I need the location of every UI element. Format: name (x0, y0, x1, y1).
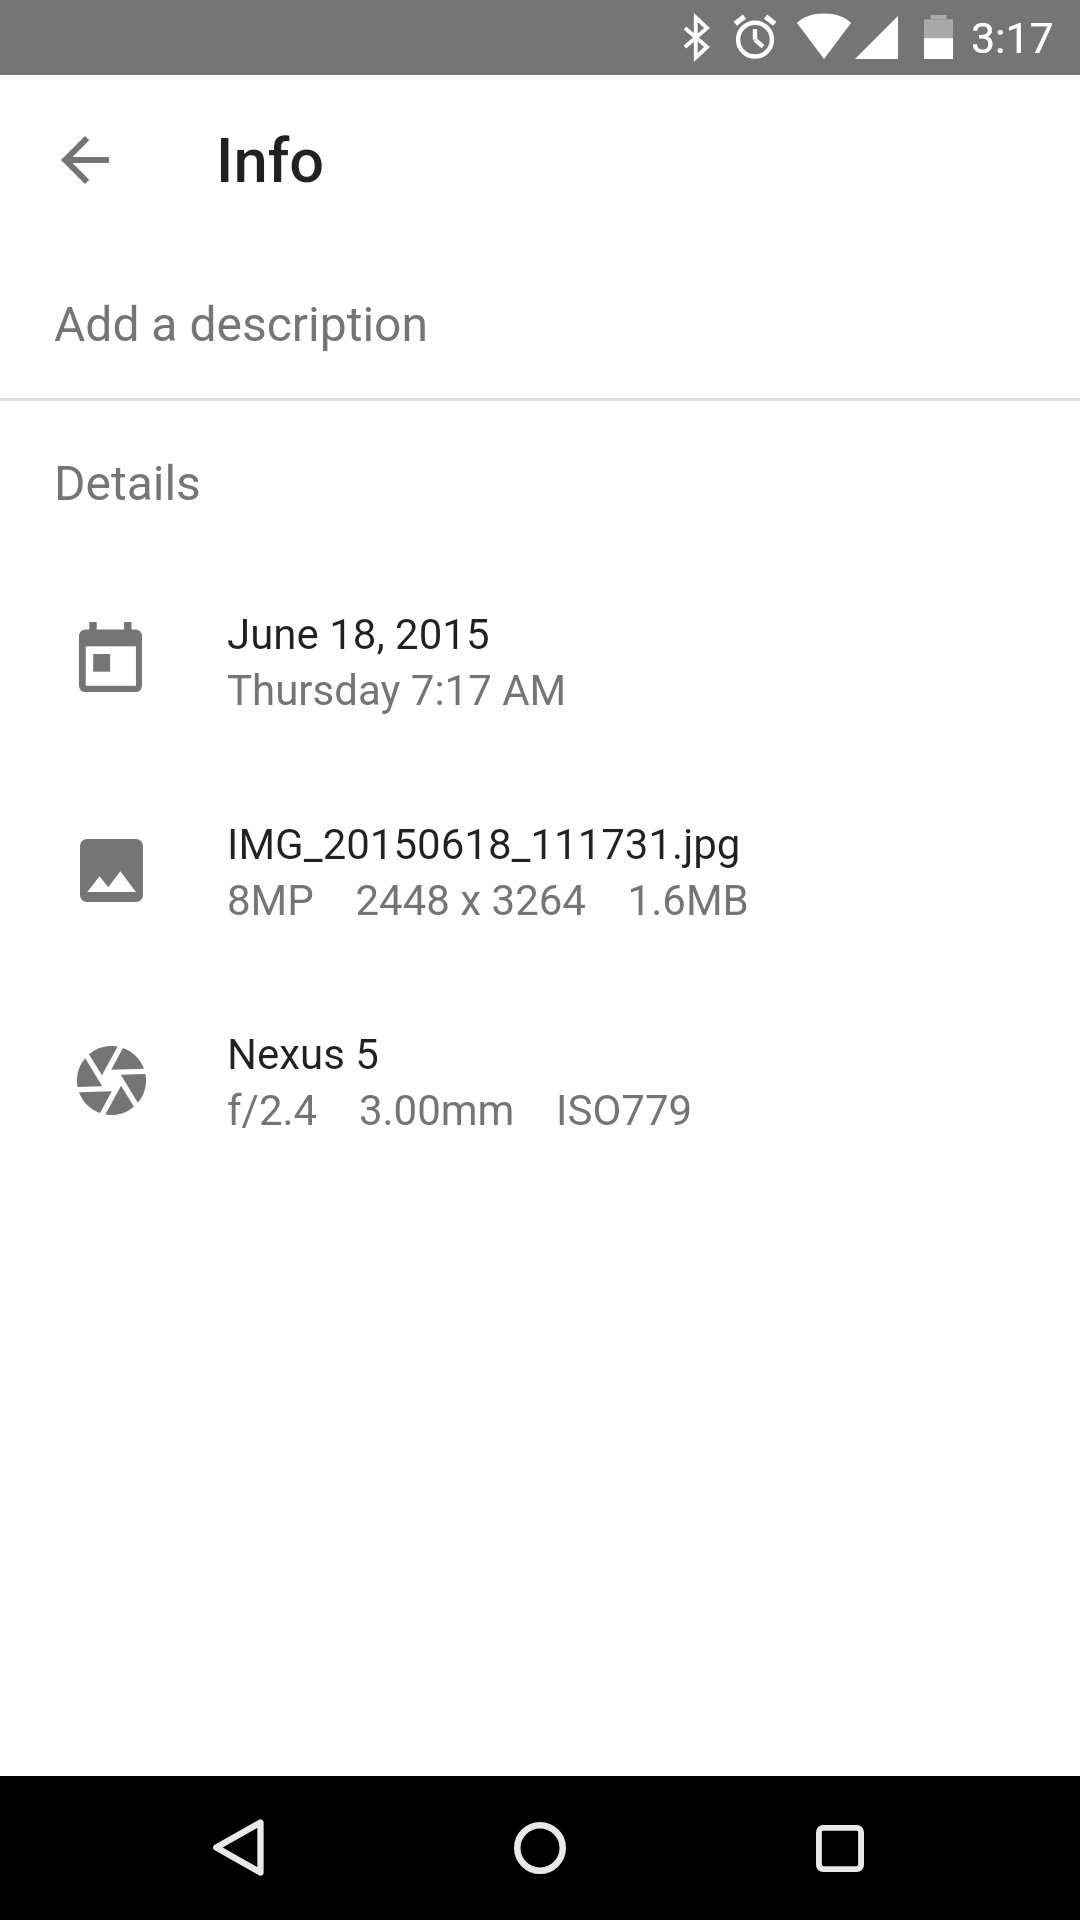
staticText: Thursday 7:17 AM (227, 661, 567, 717)
staticText: June 18, 2015 (227, 605, 490, 661)
staticText: Nexus 5 (227, 1025, 379, 1081)
staticText: IMG_20150618_111731.jpg (227, 815, 741, 871)
staticText: 8MP 2448 x 3264 1.6MB (227, 871, 749, 927)
button[interactable]: Back (37, 111, 133, 207)
staticText: Info (216, 125, 325, 197)
button[interactable]: June 18, 2015 (0, 553, 1080, 763)
staticText: f/2.4 3.00mm ISO779 (227, 1081, 693, 1137)
button[interactable]: Nexus 5 (0, 973, 1080, 1183)
button[interactable]: Back (168, 1776, 312, 1920)
button[interactable]: Add a description (0, 256, 1080, 398)
button[interactable]: Recents (768, 1776, 912, 1920)
staticText: 3:17 (971, 13, 1054, 63)
button[interactable]: Home (468, 1776, 612, 1920)
staticText: Details (54, 455, 201, 511)
staticText: Add a description (54, 296, 428, 352)
button[interactable]: IMG_20150618_111731.jpg (0, 763, 1080, 973)
